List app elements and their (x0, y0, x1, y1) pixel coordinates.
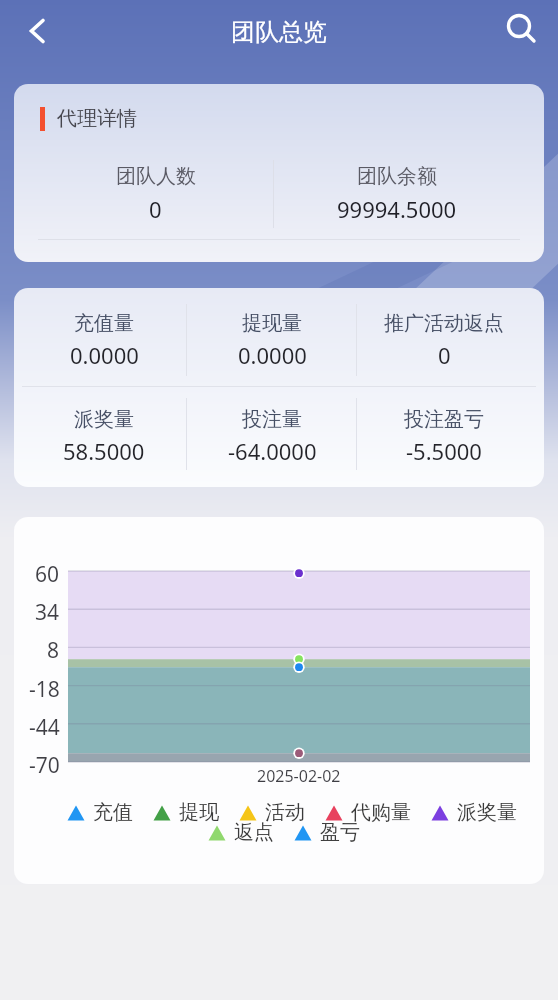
staticText: 代购量 (351, 800, 411, 825)
staticText: -5.5000 (406, 436, 482, 466)
staticText: 0 (149, 194, 162, 224)
staticText: -44 (29, 713, 60, 741)
staticText: 提现量 (242, 311, 302, 336)
staticText: 返点 (234, 820, 274, 845)
staticText: 60 (35, 560, 60, 588)
staticText: 推广活动返点 (384, 311, 504, 336)
staticText: 充值量 (74, 311, 134, 336)
staticText: 58.5000 (63, 436, 145, 466)
staticText: 8 (47, 636, 60, 664)
staticText: 代理详情 (57, 106, 137, 131)
staticText: -18 (29, 675, 60, 703)
staticText: 活动 (265, 800, 305, 825)
staticText: -70 (29, 751, 60, 779)
staticText: 0.0000 (238, 340, 307, 370)
staticText: 派奖量 (74, 407, 134, 432)
staticText: 充值 (93, 800, 133, 825)
button[interactable] (16, 8, 58, 54)
staticText: -64.0000 (228, 436, 317, 466)
staticText: 投注盈亏 (404, 407, 484, 432)
staticText: 0 (438, 340, 451, 370)
staticText: 投注量 (242, 407, 302, 432)
staticText: 团队人数 (116, 164, 196, 189)
staticText: 盈亏 (320, 820, 360, 845)
staticText: 2025-02-02 (257, 765, 341, 787)
staticText: 34 (35, 598, 60, 626)
staticText: 0.0000 (70, 340, 139, 370)
button[interactable] (498, 6, 546, 54)
staticText: 99994.5000 (337, 194, 457, 224)
staticText: 团队总览 (231, 17, 327, 47)
staticText: 提现 (179, 800, 219, 825)
staticText: 团队余额 (357, 164, 437, 189)
staticText: 派奖量 (457, 800, 517, 825)
